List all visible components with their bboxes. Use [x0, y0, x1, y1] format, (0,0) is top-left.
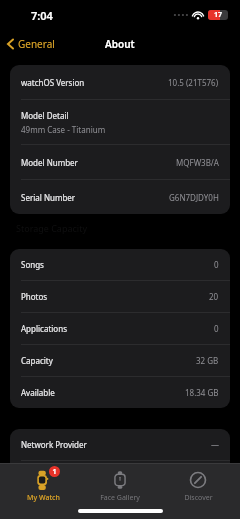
- staticText: 10.5 (21T576): [168, 77, 219, 88]
- staticText: Photos: [21, 291, 48, 302]
- button[interactable]: My Watch: [8, 469, 78, 503]
- button[interactable]: Photos: [10, 281, 230, 313]
- staticText: Storage Capacity: [16, 222, 87, 234]
- staticText: watchOS Version: [21, 77, 85, 88]
- staticText: Network Provider: [21, 439, 87, 450]
- staticText: 7:04: [31, 8, 53, 23]
- button[interactable]: Face Gallery: [85, 469, 155, 503]
- staticText: My Watch: [27, 493, 60, 503]
- staticText: About: [105, 37, 135, 51]
- staticText: 1: [52, 467, 57, 477]
- staticText: 17: [214, 10, 223, 20]
- staticText: 49mm Case - Titanium: [21, 124, 106, 135]
- button[interactable]: Songs: [10, 249, 230, 281]
- staticText: Serial Number: [21, 192, 76, 203]
- staticText: Available: [21, 387, 55, 398]
- staticText: 20: [209, 291, 219, 302]
- button[interactable]: [10, 493, 230, 511]
- button[interactable]: Model Detail: [10, 100, 230, 145]
- staticText: C4:35:D9:68:52:7B: [151, 471, 219, 482]
- button[interactable]: Serial Number: [10, 180, 230, 214]
- staticText: —: [211, 439, 219, 450]
- button[interactable]: Discover: [163, 469, 233, 503]
- button[interactable]: watchOS Version: [10, 65, 230, 100]
- staticText: MQFW3B/A: [176, 157, 219, 168]
- staticText: Face Gallery: [100, 493, 140, 503]
- button[interactable]: Network Provider: [10, 429, 230, 461]
- button[interactable]: Model Number: [10, 145, 230, 180]
- staticText: G6N7DJDY0H: [169, 192, 219, 203]
- staticText: Model Number: [21, 157, 78, 168]
- button[interactable]: Wi-Fi Address: [10, 461, 230, 493]
- button[interactable]: General: [6, 37, 55, 51]
- staticText: Applications: [21, 323, 67, 334]
- staticText: Discover: [184, 493, 213, 503]
- staticText: 0: [214, 323, 219, 334]
- staticText: General: [18, 37, 55, 51]
- button[interactable]: Available: [10, 377, 230, 408]
- button[interactable]: Capacity: [10, 345, 230, 377]
- staticText: 18.34 GB: [185, 387, 219, 398]
- staticText: 32 GB: [196, 355, 219, 366]
- button[interactable]: Applications: [10, 313, 230, 345]
- staticText: Model Detail: [21, 110, 69, 121]
- staticText: Wi-Fi Address: [21, 471, 72, 482]
- staticText: Songs: [21, 259, 44, 270]
- staticText: Capacity: [21, 355, 53, 366]
- staticText: 0: [214, 259, 219, 270]
